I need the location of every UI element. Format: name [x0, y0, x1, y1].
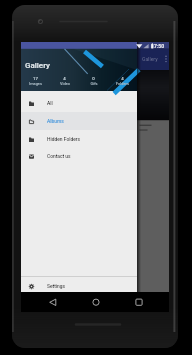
staticText: 4: [63, 76, 66, 81]
staticText: Gallery: [142, 56, 158, 62]
button[interactable]: All: [21, 94, 137, 112]
staticText: 17: [33, 76, 38, 81]
button[interactable]: Contact us: [21, 147, 137, 165]
button[interactable]: 4: [50, 76, 79, 86]
staticText: Hidden Folders: [47, 136, 81, 142]
button[interactable]: Home: [86, 294, 106, 310]
button[interactable]: Hidden Folders: [21, 130, 137, 148]
staticText: Video: [60, 81, 70, 86]
staticText: 7:50: [154, 43, 165, 49]
staticText: Images: [29, 81, 42, 86]
button[interactable]: Settings: [21, 277, 137, 295]
button[interactable]: 0: [79, 76, 108, 86]
staticText: Settings: [47, 283, 66, 289]
staticText: 4: [121, 76, 124, 81]
staticText: Albums: [47, 118, 64, 124]
staticText: Gifs: [90, 81, 98, 86]
staticText: All: [47, 100, 53, 106]
button[interactable]: Recent apps: [129, 294, 149, 310]
staticText: Folders: [116, 81, 129, 86]
staticText: 0: [92, 76, 95, 81]
button[interactable]: Back: [43, 294, 63, 310]
button[interactable]: 17: [21, 76, 50, 86]
button[interactable]: 4: [108, 76, 137, 86]
button[interactable]: Albums: [21, 112, 137, 130]
button[interactable]: More options: [162, 53, 170, 64]
staticText: Gallery: [25, 61, 50, 70]
staticText: Contact us: [47, 153, 71, 159]
